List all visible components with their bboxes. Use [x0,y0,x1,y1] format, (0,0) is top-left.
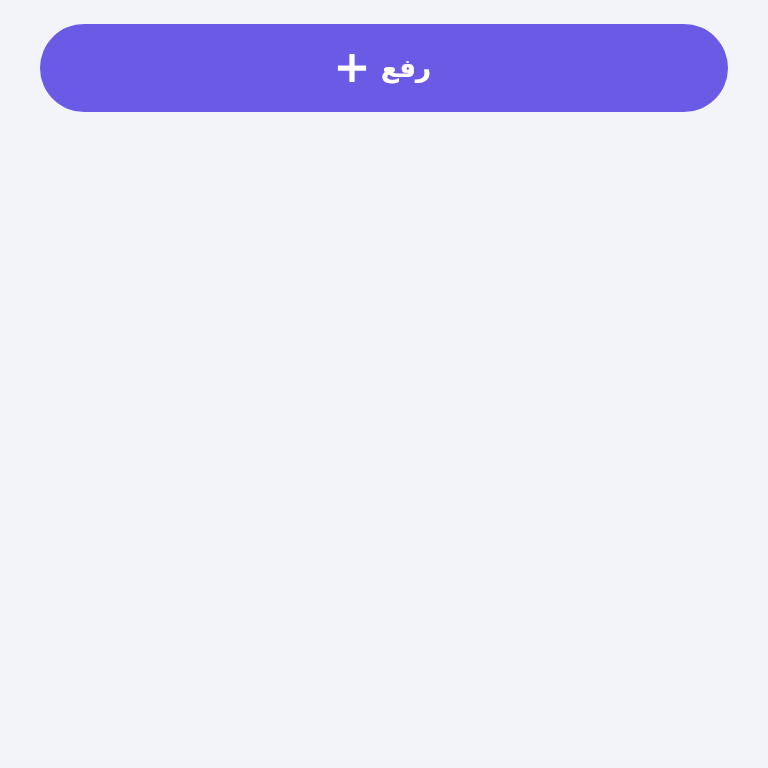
button[interactable]: Upload [40,24,728,112]
other: Upload [337,53,367,83]
staticText: رفع [381,53,431,83]
